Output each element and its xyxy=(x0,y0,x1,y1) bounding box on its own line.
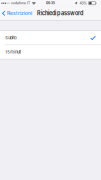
staticText: Richiedi password xyxy=(37,10,83,17)
button[interactable]: 15 minuti xyxy=(0,45,101,59)
button[interactable]: Subito xyxy=(0,31,101,45)
staticText: Restrizioni xyxy=(7,10,32,16)
staticText: vodafone IT xyxy=(11,1,30,5)
staticText: 15 minuti xyxy=(5,50,21,54)
staticText: 43% xyxy=(80,1,87,5)
staticText: Subito xyxy=(5,35,16,40)
button[interactable]: Restrizioni xyxy=(0,6,34,20)
staticText: 09:35 xyxy=(46,1,55,5)
